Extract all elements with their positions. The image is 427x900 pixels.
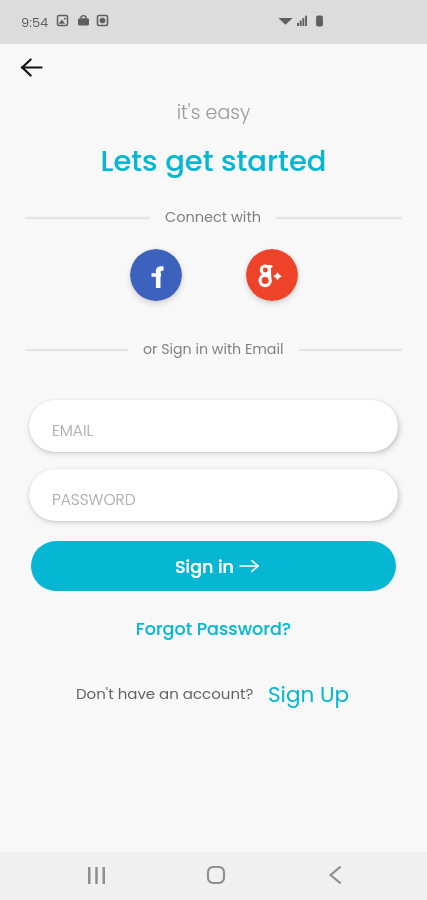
staticText: Don't have an account? [76,683,254,704]
button[interactable]: Sign in [31,541,396,591]
button[interactable]: EMAIL [29,400,398,452]
button[interactable]: Sign in with Google [246,249,298,301]
staticText: it's easy [0,99,427,126]
staticText: Lets get started [0,141,427,182]
button[interactable]: PASSWORD [29,469,398,521]
staticText: Connect with [165,207,261,227]
button[interactable]: Recent apps [76,855,116,895]
button[interactable]: Forgot Password? [0,617,427,642]
staticText: Sign in [175,555,234,580]
staticText: or Sign in with Email [143,339,284,359]
button[interactable]: Sign in with Facebook [130,249,182,301]
button[interactable]: Sign Up [268,679,349,709]
button[interactable]: Home [196,855,236,895]
staticText: EMAIL [52,420,94,442]
button[interactable]: Back [13,49,49,85]
staticText: PASSWORD [52,489,136,511]
button[interactable]: Back [315,855,355,895]
staticText: 9:54 [21,13,49,31]
